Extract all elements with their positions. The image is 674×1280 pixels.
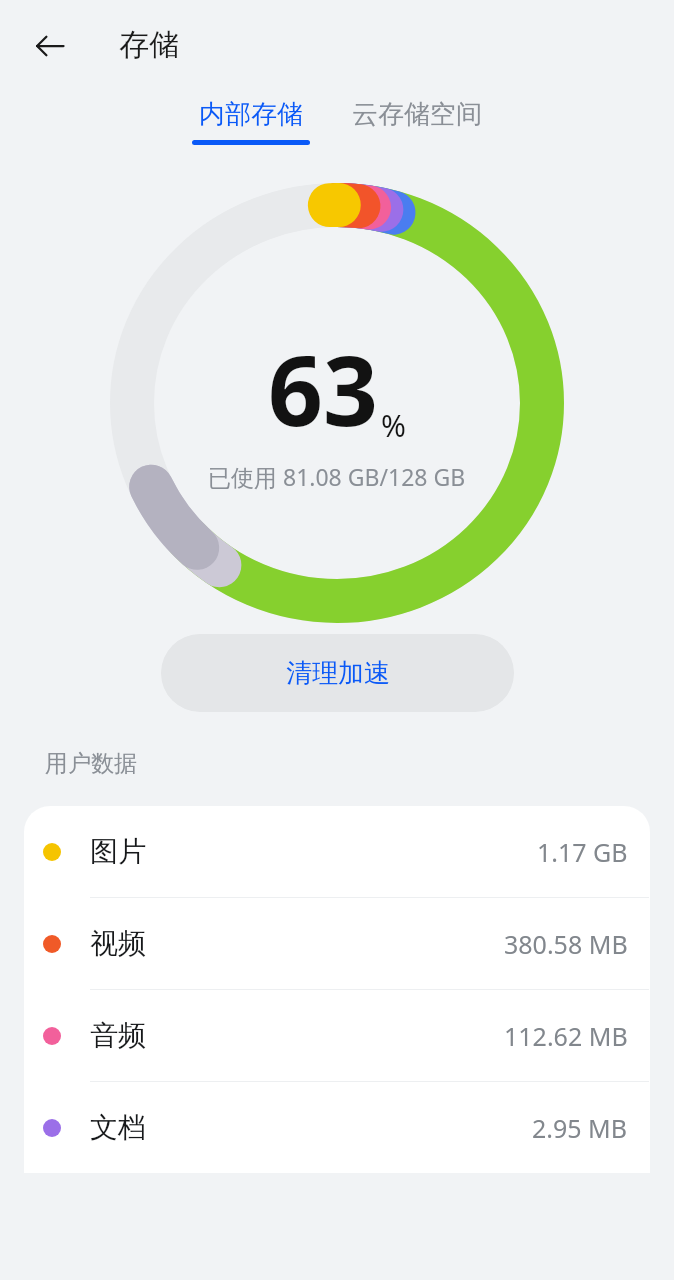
button[interactable]: 内部存储 [178, 92, 324, 151]
staticText: 63 [268, 323, 378, 454]
staticText: 云存储空间 [352, 98, 482, 131]
staticText: 音频 [90, 1018, 146, 1053]
staticText: 文档 [90, 1110, 146, 1145]
staticText: 已使用 81.08 GB/128 GB [208, 461, 466, 492]
staticText: 图片 [90, 834, 146, 869]
staticText: % [381, 405, 406, 446]
staticText: 1.17 GB [537, 835, 628, 869]
button[interactable]: 清理加速 [161, 634, 514, 712]
staticText: 内部存储 [199, 98, 303, 131]
button[interactable]: 音频 [24, 990, 650, 1081]
button[interactable]: 视频 [24, 898, 650, 989]
staticText: 视频 [90, 926, 146, 961]
staticText: 2.95 MB [532, 1111, 628, 1145]
button[interactable]: 文档 [24, 1082, 650, 1173]
staticText: 用户数据 [45, 749, 137, 778]
button[interactable]: 图片 [24, 806, 650, 897]
staticText: 存储 [119, 26, 179, 64]
staticText: 清理加速 [286, 657, 390, 690]
staticText: 112.62 MB [504, 1019, 628, 1053]
button[interactable]: 云存储空间 [338, 92, 496, 151]
staticText: 380.58 MB [504, 927, 628, 961]
button[interactable]: Back [26, 22, 74, 70]
